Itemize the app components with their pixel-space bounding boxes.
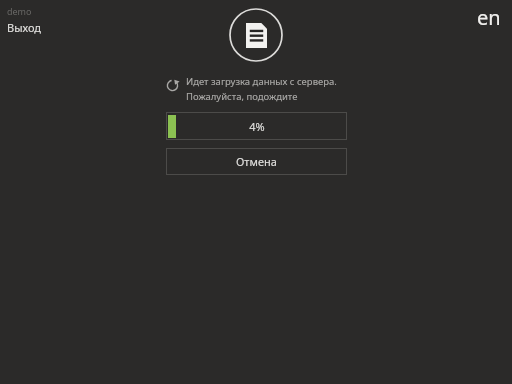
staticText: en xyxy=(477,4,501,31)
staticText: Идет загрузка данных с сервера. xyxy=(186,75,337,88)
staticText: Пожалуйста, подождите xyxy=(186,90,298,103)
staticText: 4% xyxy=(249,119,265,134)
button[interactable]: Выход xyxy=(7,20,42,35)
button[interactable]: en xyxy=(477,4,501,31)
other: Document xyxy=(229,8,283,62)
staticText: demo xyxy=(7,5,32,17)
staticText: Отмена xyxy=(236,154,277,169)
button[interactable]: Отмена xyxy=(166,148,347,175)
other: Loading xyxy=(166,79,179,92)
staticText: Выход xyxy=(7,20,42,35)
